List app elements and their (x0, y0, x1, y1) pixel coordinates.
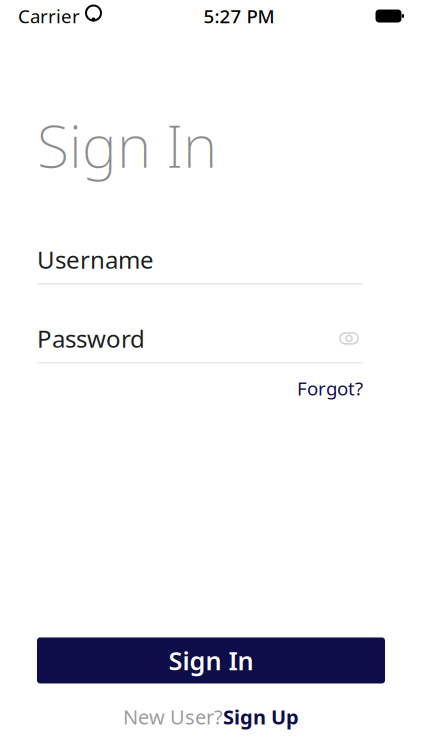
staticText: Sign In (168, 644, 253, 677)
staticText: Carrier (18, 4, 80, 28)
staticText: Password (37, 322, 145, 354)
staticText: Forgot? (297, 376, 363, 401)
staticText: 5:27 PM (203, 4, 274, 28)
staticText: Sign In (37, 106, 217, 184)
button[interactable]: Sign In (37, 637, 385, 683)
staticText: Username (37, 243, 154, 275)
button[interactable]: Show password (335, 327, 363, 349)
button[interactable]: Forgot? (297, 373, 363, 404)
staticText: New User? (123, 703, 223, 730)
button[interactable]: Sign Up (223, 703, 299, 730)
staticText: Sign Up (223, 703, 299, 730)
